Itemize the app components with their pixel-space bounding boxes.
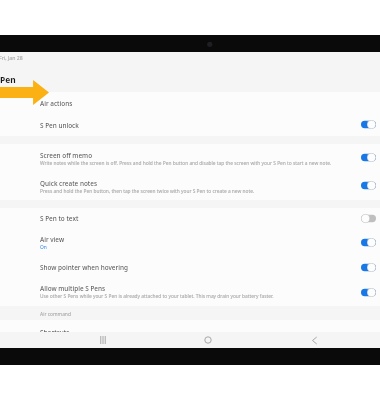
button[interactable]: [0, 114, 380, 136]
button[interactable]: [0, 208, 380, 231]
button[interactable]: Screen off memo switch: [361, 153, 376, 162]
staticText: Air view: [40, 235, 65, 244]
button[interactable]: [0, 231, 380, 255]
staticText: S Pen to text: [40, 214, 79, 223]
button[interactable]: Air view switch: [361, 238, 376, 247]
button[interactable]: [0, 280, 380, 306]
button[interactable]: [0, 92, 380, 114]
button[interactable]: S Pen unlock switch: [361, 120, 376, 129]
staticText: On: [40, 244, 47, 251]
staticText: Fri, Jan 28: [0, 54, 23, 61]
button[interactable]: S Pen to text switch: [361, 214, 376, 223]
staticText: Allow multiple S Pens: [40, 284, 106, 293]
staticText: S Pen unlock: [40, 121, 79, 130]
staticText: Press and hold the Pen button, then tap …: [40, 188, 255, 195]
button[interactable]: Quick create notes switch: [361, 181, 376, 190]
staticText: Air command: [40, 311, 71, 318]
staticText: Write notes while the screen is off. Pre…: [40, 160, 332, 167]
button[interactable]: Back: [296, 332, 332, 348]
button[interactable]: [0, 172, 380, 200]
staticText: Air actions: [40, 99, 73, 108]
staticText: Use other S Pens while your S Pen is alr…: [40, 293, 274, 300]
button[interactable]: [0, 255, 380, 280]
button[interactable]: Recent apps: [85, 332, 121, 348]
staticText: Show pointer when hovering: [40, 263, 128, 272]
staticText: Shortcuts: [40, 328, 70, 337]
staticText: Pen: [0, 74, 16, 85]
button[interactable]: Show pointer when hovering switch: [361, 263, 376, 272]
staticText: Quick create notes: [40, 179, 98, 188]
button[interactable]: Home: [190, 332, 226, 348]
button[interactable]: Allow multiple S Pens switch: [361, 288, 376, 297]
staticText: Screen off memo: [40, 151, 93, 160]
button[interactable]: [0, 144, 380, 172]
